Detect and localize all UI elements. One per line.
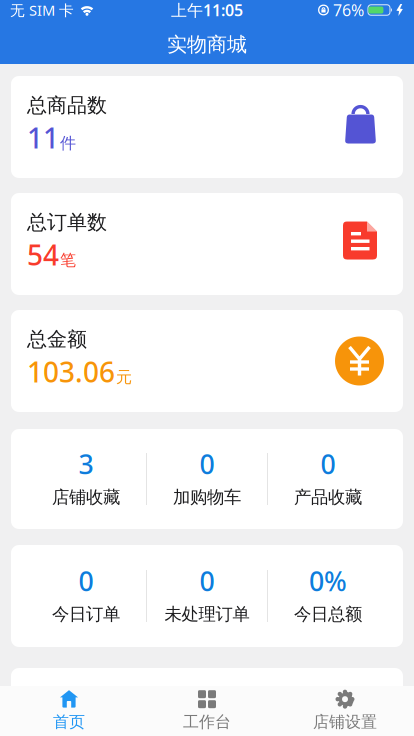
staticText: 无 SIM 卡 (10, 0, 74, 20)
staticText: 产品收藏 (294, 487, 362, 508)
staticText: 0 (320, 446, 335, 481)
staticText: 加购物车 (173, 487, 241, 508)
staticText: 元 (116, 367, 132, 387)
staticText: 件 (60, 133, 76, 153)
staticText: 0 (199, 446, 214, 481)
staticText: 店铺设置 (313, 712, 377, 732)
staticText: 54 (27, 236, 59, 273)
button[interactable]: 总订单数 (11, 193, 403, 295)
staticText: 今日订单 (52, 604, 120, 625)
staticText: 0 (78, 563, 93, 598)
staticText: 店铺收藏 (52, 487, 120, 508)
button[interactable]: 0 (268, 446, 388, 512)
staticText: 笔 (60, 250, 76, 270)
staticText: 总金额 (27, 327, 87, 352)
staticText: 76% (333, 0, 364, 21)
staticText: 今日总额 (294, 604, 362, 625)
button[interactable]: 0 (147, 563, 267, 629)
button[interactable]: 0 (147, 446, 267, 512)
staticText: 11 (27, 119, 59, 156)
button[interactable]: 总商品数 (11, 76, 403, 178)
staticText: 总商品数 (27, 93, 107, 118)
button[interactable]: 首页 (0, 690, 138, 732)
button[interactable]: 店铺设置 (276, 690, 414, 732)
staticText: 0% (309, 563, 347, 598)
staticText: 总订单数 (27, 210, 107, 235)
staticText: 未处理订单 (164, 604, 249, 625)
staticText: 3 (78, 446, 93, 481)
button[interactable]: 3 (26, 446, 146, 512)
button[interactable]: 工作台 (138, 690, 276, 732)
staticText: 103.06 (27, 353, 115, 390)
button[interactable]: 总金额 (11, 310, 403, 412)
staticText: 0 (199, 563, 214, 598)
staticText: 首页 (53, 712, 85, 732)
staticText: 实物商城 (167, 32, 247, 57)
button[interactable]: 0% (268, 563, 388, 629)
staticText: 上午11:05 (171, 0, 243, 21)
button[interactable]: 0 (26, 563, 146, 629)
staticText: 工作台 (183, 712, 231, 732)
